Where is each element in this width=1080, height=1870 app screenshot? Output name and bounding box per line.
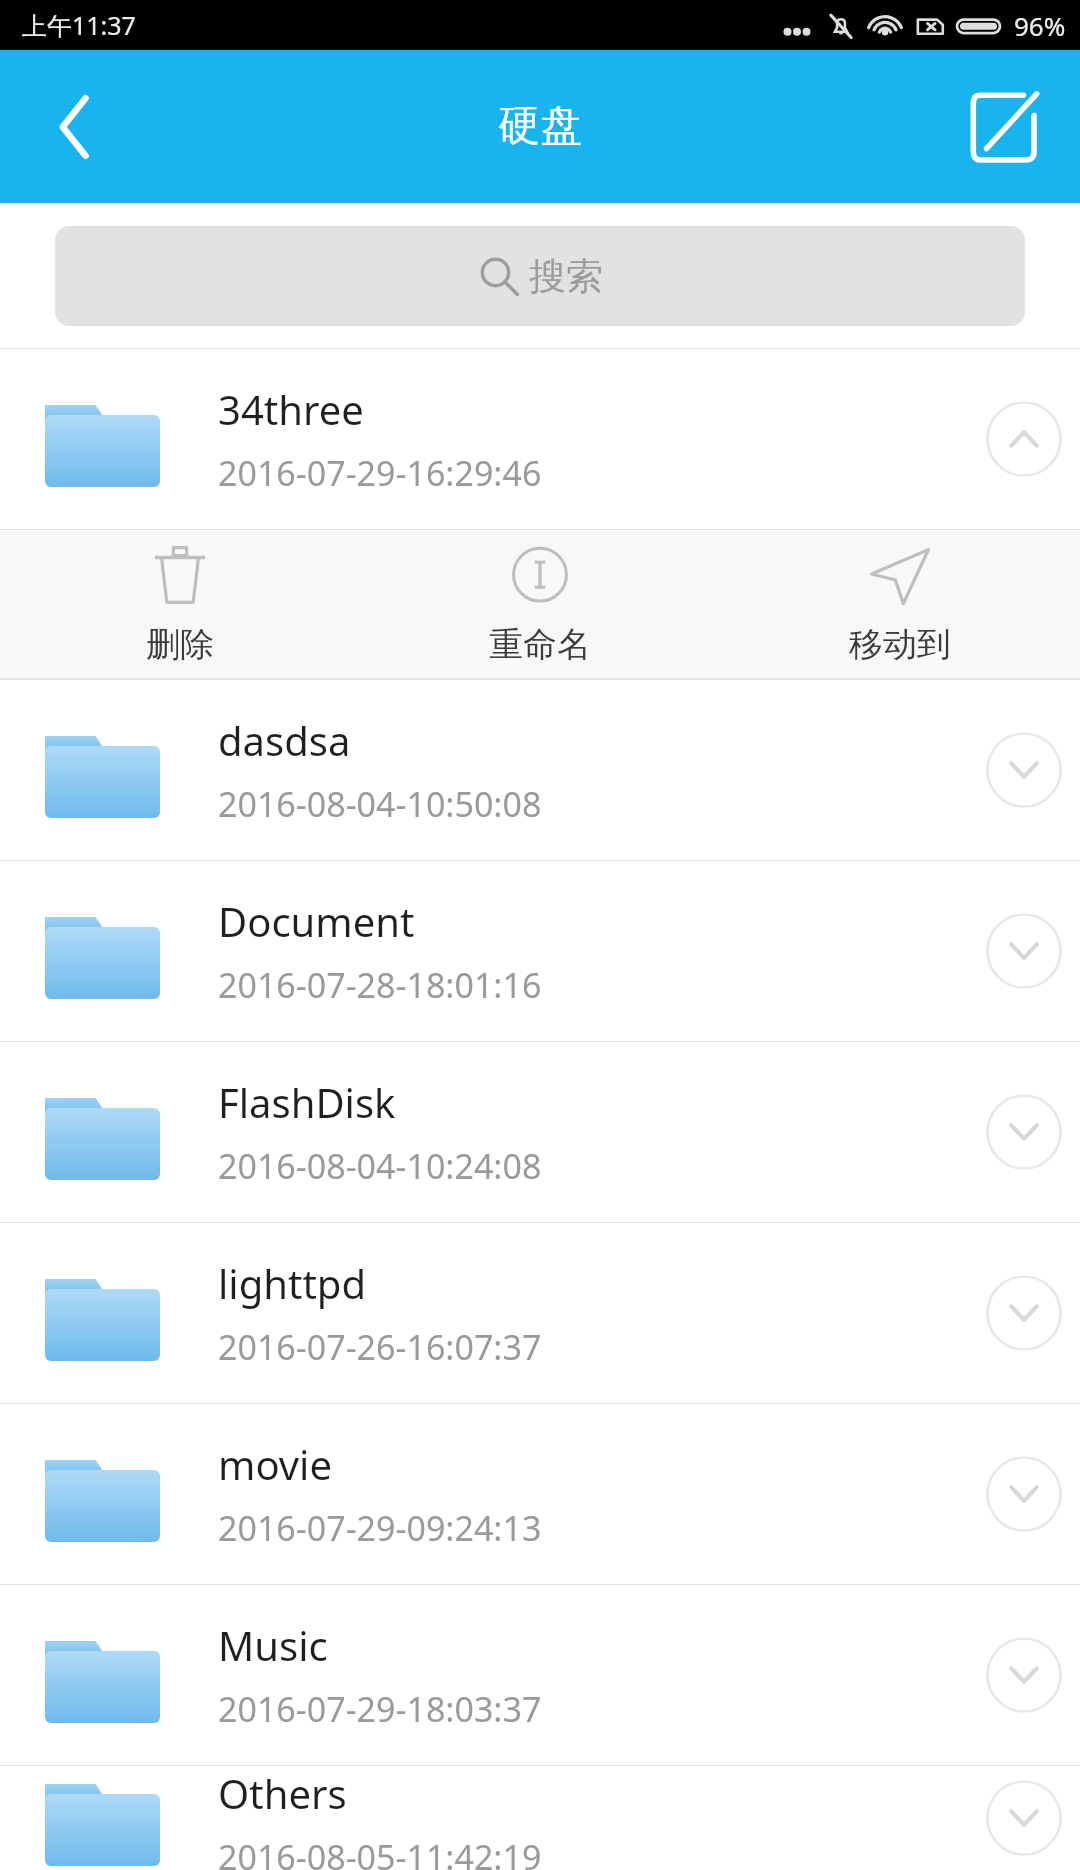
button[interactable]: Back — [0, 50, 150, 203]
button[interactable]: 34three — [0, 349, 1080, 529]
staticText: Others — [218, 1766, 347, 1820]
staticText: Music — [218, 1618, 328, 1672]
staticText: dasdsa — [218, 713, 351, 767]
staticText: lighttpd — [218, 1256, 367, 1310]
button[interactable]: Music — [0, 1585, 1080, 1765]
staticText: 移动到 — [849, 623, 951, 666]
staticText: 2016-08-04-10:24:08 — [218, 1143, 542, 1189]
staticText: 96% — [1014, 8, 1066, 43]
staticText: 上午11:37 — [22, 8, 136, 42]
button[interactable]: 移动到 — [720, 530, 1080, 678]
button[interactable]: dasdsa — [0, 680, 1080, 860]
button[interactable]: Expand — [968, 680, 1080, 860]
button[interactable]: Edit — [930, 50, 1080, 203]
staticText: 硬盘 — [498, 100, 582, 153]
button[interactable]: Expand — [968, 1585, 1080, 1765]
button[interactable]: movie — [0, 1404, 1080, 1584]
staticText: 2016-08-05-11:42:19 — [218, 1834, 542, 1870]
button[interactable]: Expand — [968, 1404, 1080, 1584]
staticText: 重命名 — [489, 623, 591, 666]
button[interactable]: Others — [0, 1766, 1080, 1870]
staticText: movie — [218, 1437, 332, 1491]
staticText: 2016-07-28-18:01:16 — [218, 962, 542, 1008]
button[interactable]: 重命名 — [360, 530, 720, 678]
staticText: 2016-08-04-10:50:08 — [218, 781, 542, 827]
button[interactable]: Expand — [968, 1766, 1080, 1870]
button[interactable]: Expand — [968, 1042, 1080, 1222]
button[interactable]: Document — [0, 861, 1080, 1041]
button[interactable]: lighttpd — [0, 1223, 1080, 1403]
staticText: 2016-07-26-16:07:37 — [218, 1324, 542, 1370]
staticText: 34three — [218, 382, 364, 436]
staticText: 搜索 — [529, 253, 603, 300]
button[interactable]: 删除 — [0, 530, 360, 678]
button[interactable]: Expand — [968, 1223, 1080, 1403]
staticText: 删除 — [146, 623, 214, 666]
button[interactable]: Expand — [968, 861, 1080, 1041]
button[interactable]: Collapse — [968, 349, 1080, 529]
button[interactable]: FlashDisk — [0, 1042, 1080, 1222]
staticText: FlashDisk — [218, 1075, 396, 1129]
staticText: 2016-07-29-09:24:13 — [218, 1505, 542, 1551]
staticText: 2016-07-29-16:29:46 — [218, 450, 542, 496]
staticText: Document — [218, 894, 415, 948]
button[interactable]: 搜索 — [55, 226, 1025, 326]
staticText: 2016-07-29-18:03:37 — [218, 1686, 542, 1732]
